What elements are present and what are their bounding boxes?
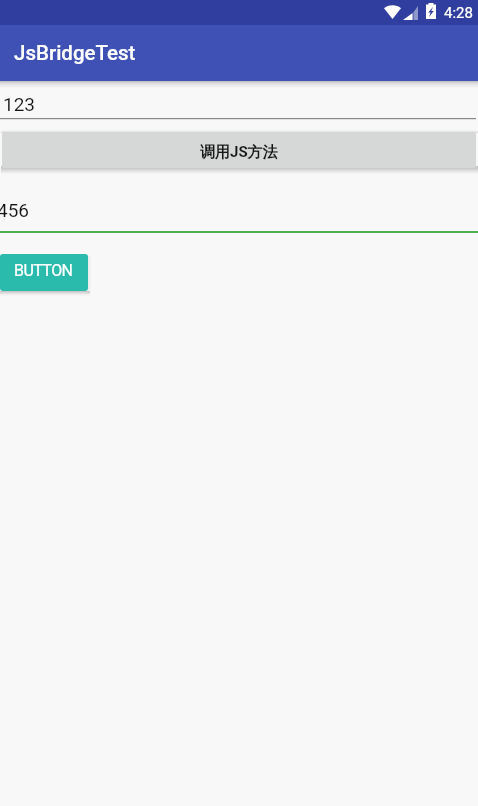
staticText: JsBridgeTest (14, 41, 136, 65)
staticText: 123 (3, 93, 36, 115)
button[interactable]: BUTTON (0, 254, 88, 291)
button[interactable]: 123 (0, 88, 478, 119)
other: Battery charging (426, 3, 436, 19)
button[interactable]: 调用JS方法 (2, 132, 476, 168)
staticText: 4:28 (444, 4, 473, 22)
other: Cellular signal (403, 6, 418, 20)
staticText: 调用JS方法 (200, 143, 278, 162)
button[interactable]: 456 (0, 196, 478, 230)
staticText: 456 (0, 199, 30, 221)
other: Wi-Fi signal (384, 5, 401, 19)
staticText: BUTTON (14, 261, 73, 280)
